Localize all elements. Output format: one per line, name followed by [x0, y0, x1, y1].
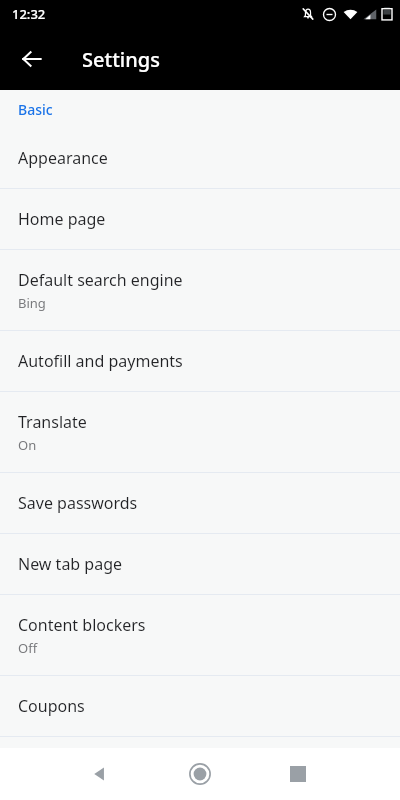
button[interactable]: Back [8, 35, 56, 83]
button[interactable]: Home page [0, 189, 400, 249]
button[interactable]: Autofill and payments [0, 331, 400, 391]
staticText: New tab page [18, 553, 123, 575]
staticText: Translate [18, 411, 87, 433]
staticText: Appearance [18, 147, 108, 169]
button[interactable]: Recent apps [276, 752, 320, 796]
staticText: Coupons [18, 695, 85, 717]
staticText: Content blockers [18, 614, 146, 636]
button[interactable]: Home [178, 752, 222, 796]
staticText: Home page [18, 208, 106, 230]
button[interactable]: New tab page [0, 534, 400, 594]
staticText: 12:32 [12, 5, 46, 23]
button[interactable]: Translate [0, 392, 400, 472]
button[interactable]: Appearance [0, 128, 400, 188]
button[interactable]: Default search engine [0, 250, 400, 330]
staticText: Save passwords [18, 492, 138, 514]
staticText: On [18, 436, 37, 454]
staticText: Default search engine [18, 269, 183, 291]
button[interactable]: Save passwords [0, 473, 400, 533]
button[interactable]: Back [78, 752, 122, 796]
staticText: Basic [18, 100, 53, 119]
staticText: Off [18, 639, 38, 657]
staticText: Autofill and payments [18, 350, 183, 372]
staticText: Settings [82, 46, 160, 73]
button[interactable]: Content blockers [0, 595, 400, 675]
button[interactable]: Coupons [0, 676, 400, 736]
staticText: Bing [18, 294, 46, 312]
